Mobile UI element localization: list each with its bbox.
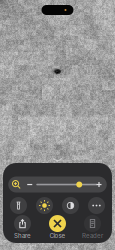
button[interactable]: Contrast (62, 197, 79, 214)
button[interactable]: Brightness (36, 197, 53, 214)
button[interactable]: Close (40, 215, 75, 239)
button[interactable]: Reader (75, 215, 110, 239)
button[interactable]: Flashlight (10, 197, 27, 214)
button[interactable]: Share (5, 215, 40, 239)
button[interactable]: More filters (88, 197, 105, 214)
staticText: Share (14, 232, 31, 239)
staticText: Close (49, 232, 65, 239)
staticText: Reader (82, 232, 103, 239)
button[interactable]: Zoom level (8, 176, 24, 192)
